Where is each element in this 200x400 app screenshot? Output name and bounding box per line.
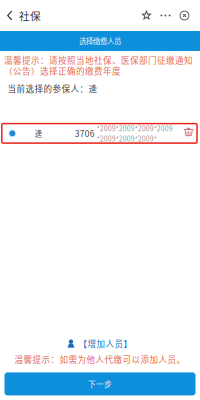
staticText: 逄 xyxy=(35,128,42,139)
button[interactable]: 关闭 xyxy=(175,0,194,31)
staticText: 当前选择的参保人：逄 xyxy=(7,82,97,95)
staticText: 下一步 xyxy=(88,378,112,389)
staticText: 【增加人员】 xyxy=(79,337,133,350)
staticText: *2009*2009*2009*2009*2009*2009*2009* xyxy=(97,123,173,143)
button[interactable]: 收藏 xyxy=(137,0,156,31)
button[interactable]: 社保 xyxy=(0,0,49,31)
button[interactable]: 下一步 xyxy=(4,372,195,395)
button[interactable]: 更多 xyxy=(156,0,175,31)
button[interactable]: 逄 xyxy=(2,124,197,143)
staticText: 3706 xyxy=(75,127,95,140)
staticText: 选择缴费人员 xyxy=(79,36,121,46)
staticText: 温馨提示：请按照当地社保、医保部门征缴通知（公告）选择正确的缴费年度 xyxy=(4,54,193,76)
staticText: 温馨提示：如需为他人代缴可以添加人员。 xyxy=(14,353,185,365)
staticText: 社保 xyxy=(19,8,41,23)
button[interactable]: 【增加人员】 xyxy=(67,338,133,349)
